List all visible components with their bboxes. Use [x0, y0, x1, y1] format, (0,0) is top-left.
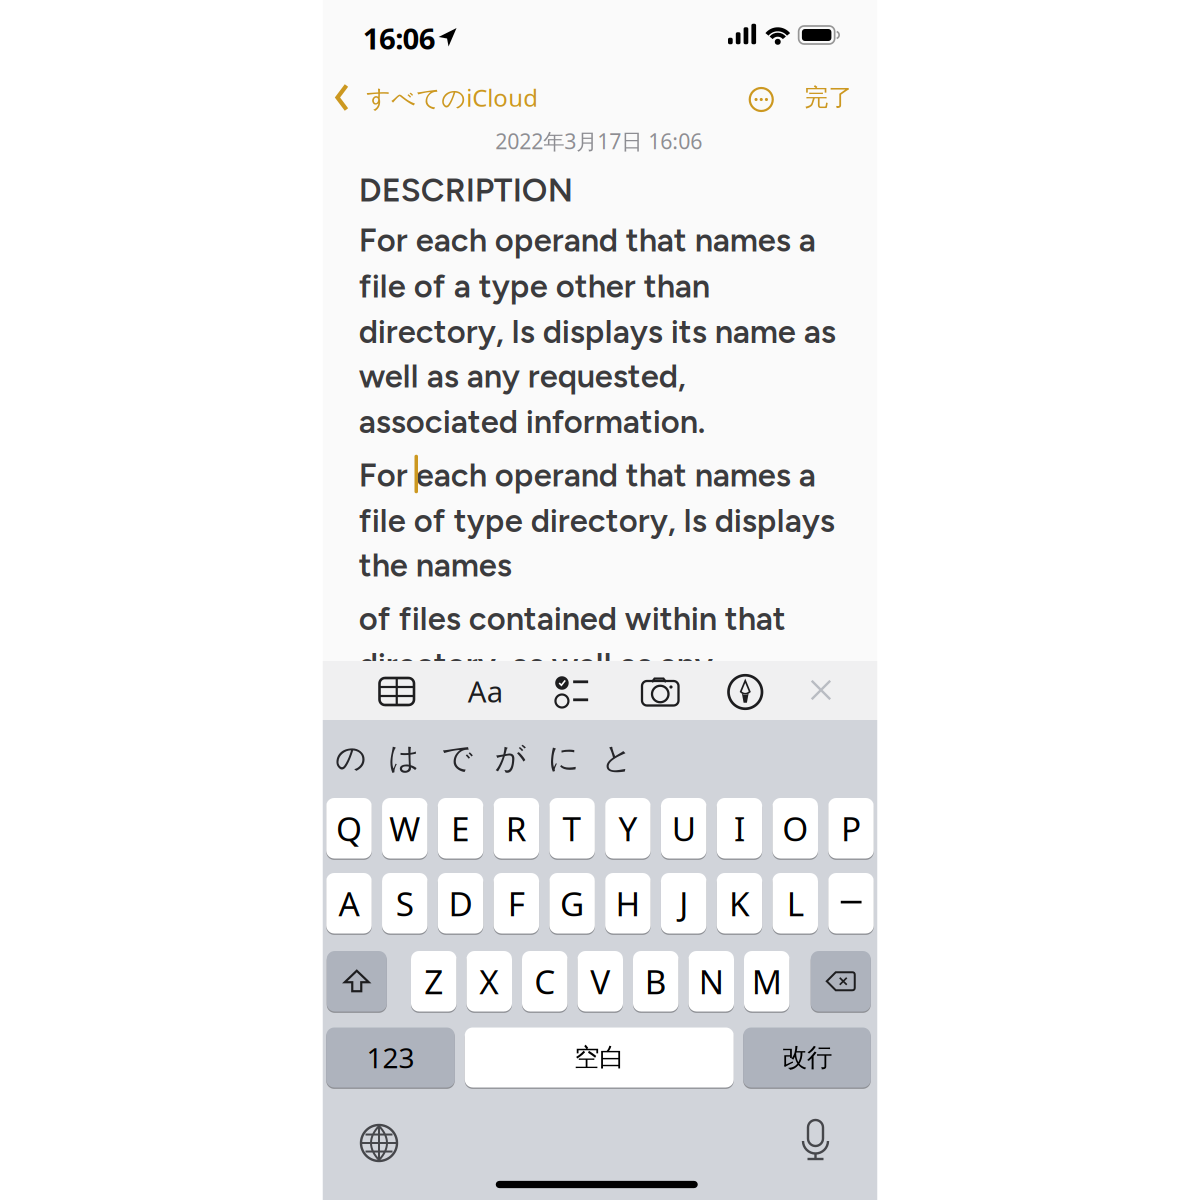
button[interactable]: 完了 [804, 83, 852, 112]
button[interactable]: は [388, 739, 419, 777]
staticText: すべてのiCloud [366, 82, 538, 113]
button[interactable]: と [601, 739, 632, 777]
button[interactable]: V [577, 951, 623, 1011]
staticText: と [601, 739, 632, 777]
button[interactable]: I [717, 798, 762, 858]
staticText: 改行 [782, 1042, 832, 1073]
button[interactable]: Markup [728, 675, 762, 709]
staticText: file of a type other than [359, 266, 710, 306]
button[interactable]: Format [468, 671, 503, 710]
button[interactable]: T [549, 798, 595, 858]
staticText: For each operand that names a [359, 455, 816, 495]
staticText: Y [618, 806, 637, 850]
staticText: F [508, 881, 525, 925]
staticText: は [388, 739, 419, 777]
staticText: 123 [366, 1039, 414, 1076]
staticText: 16:06 [363, 18, 436, 57]
staticText: of files contained within that [359, 599, 786, 638]
button[interactable]: Back [335, 75, 635, 119]
staticText: Q [336, 806, 362, 850]
staticText: に [548, 739, 579, 777]
staticText: M [752, 959, 782, 1003]
staticText: P [841, 806, 861, 850]
button[interactable]: X [466, 951, 512, 1011]
button[interactable]: O [772, 798, 818, 858]
button[interactable]: Next keyboard [361, 1125, 397, 1161]
staticText: 2022年3月17日 16:06 [495, 127, 702, 155]
staticText: K [729, 881, 750, 925]
staticText: U [672, 806, 696, 850]
staticText: file of type directory, ls displays [359, 501, 835, 540]
button[interactable]: 123 [326, 1027, 455, 1087]
staticText: well as any requested, [359, 356, 686, 396]
button[interactable]: U [661, 798, 706, 858]
staticText: の [335, 739, 366, 777]
staticText: R [506, 806, 527, 850]
staticText: 空白 [574, 1042, 624, 1073]
button[interactable]: R [494, 798, 539, 858]
staticText: DESCRIPTION [359, 170, 573, 210]
button[interactable]: L [772, 873, 818, 933]
button[interactable]: B [633, 951, 678, 1011]
staticText: D [449, 881, 473, 925]
staticText: For each operand that names a [359, 220, 816, 260]
staticText: I [734, 806, 745, 850]
button[interactable]: M [744, 951, 789, 1011]
button[interactable]: G [549, 873, 595, 933]
staticText: directory, ls displays its name as [359, 312, 836, 351]
button[interactable]: C [522, 951, 567, 1011]
button[interactable]: 空白 [465, 1027, 734, 1087]
button[interactable]: Shift [327, 951, 387, 1011]
staticText: S [396, 881, 414, 925]
button[interactable]: に [548, 739, 579, 777]
button[interactable]: J [661, 873, 706, 933]
button[interactable]: K [717, 873, 762, 933]
button[interactable]: P [828, 798, 874, 858]
button[interactable]: Insert photo [642, 677, 678, 705]
staticText: V [590, 959, 610, 1003]
staticText: N [699, 959, 724, 1003]
staticText: the names [359, 545, 512, 585]
staticText: H [615, 881, 640, 925]
staticText: B [645, 959, 667, 1003]
button[interactable]: Insert table [379, 678, 414, 705]
staticText: 完了 [804, 83, 852, 112]
button[interactable]: F [494, 873, 539, 933]
button[interactable]: Delete [811, 951, 871, 1011]
staticText: L [787, 881, 804, 925]
staticText: X [479, 959, 499, 1003]
staticText: W [389, 806, 420, 850]
staticText: で [442, 739, 473, 777]
staticText: Z [424, 959, 443, 1003]
button[interactable]: S [382, 873, 427, 933]
staticText: A [338, 881, 359, 925]
button[interactable]: で [442, 739, 473, 777]
staticText: J [679, 881, 688, 925]
staticText: ー [838, 888, 863, 919]
staticText: directory, as well as any [359, 645, 713, 684]
staticText: E [451, 806, 470, 850]
button[interactable]: A [326, 873, 372, 933]
button[interactable]: Checklist [555, 676, 588, 707]
staticText: Aa [468, 671, 503, 710]
button[interactable]: Y [605, 798, 651, 858]
button[interactable]: D [438, 873, 483, 933]
staticText: G [560, 881, 584, 925]
button[interactable]: H [605, 873, 651, 933]
button[interactable]: が [495, 739, 526, 777]
button[interactable]: ー [828, 873, 874, 933]
button[interactable]: Q [326, 798, 372, 858]
staticText: C [534, 959, 555, 1003]
button[interactable]: 改行 [743, 1027, 871, 1087]
button[interactable]: Z [411, 951, 456, 1011]
button[interactable]: E [438, 798, 483, 858]
button[interactable]: W [382, 798, 427, 858]
staticText: が [495, 739, 526, 777]
button[interactable]: の [335, 739, 366, 777]
button[interactable]: More [750, 88, 773, 111]
staticText: O [782, 806, 808, 850]
button[interactable]: N [688, 951, 734, 1011]
button[interactable]: Dictate [794, 1119, 836, 1163]
button[interactable]: Dismiss keyboard [810, 679, 832, 701]
staticText: associated information. [359, 402, 706, 441]
